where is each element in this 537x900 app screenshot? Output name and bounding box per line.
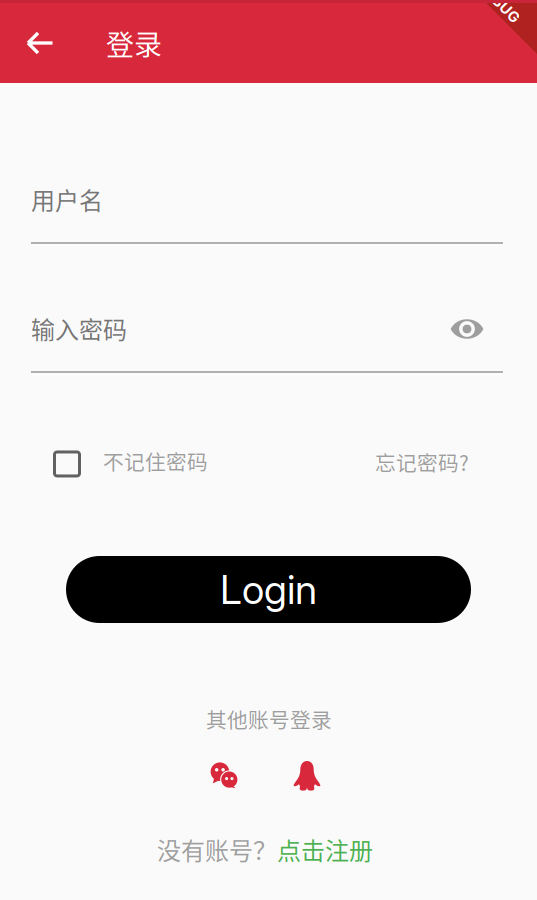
button[interactable]: 不记住密码 xyxy=(53,449,208,479)
staticText: 没有账号？ xyxy=(157,832,277,867)
staticText: 输入密码 xyxy=(31,311,127,346)
staticText: DEBUG xyxy=(473,0,525,11)
staticText: 用户名 xyxy=(31,182,103,217)
staticText: 其他账号登录 xyxy=(206,704,332,734)
button[interactable]: Show password xyxy=(443,305,491,353)
button[interactable]: 点击注册 xyxy=(277,832,373,867)
staticText: 登录 xyxy=(106,23,162,63)
button[interactable]: Login xyxy=(66,556,471,623)
staticText: 不记住密码 xyxy=(103,446,208,476)
button[interactable]: Sign in with QQ xyxy=(285,754,329,798)
staticText: 忘记密码? xyxy=(375,447,469,477)
button[interactable]: 忘记密码? xyxy=(375,447,469,477)
staticText: Login xyxy=(220,565,317,614)
staticText: 点击注册 xyxy=(277,832,373,867)
button[interactable]: Sign in with WeChat xyxy=(202,754,246,798)
button[interactable]: Back xyxy=(12,15,68,71)
